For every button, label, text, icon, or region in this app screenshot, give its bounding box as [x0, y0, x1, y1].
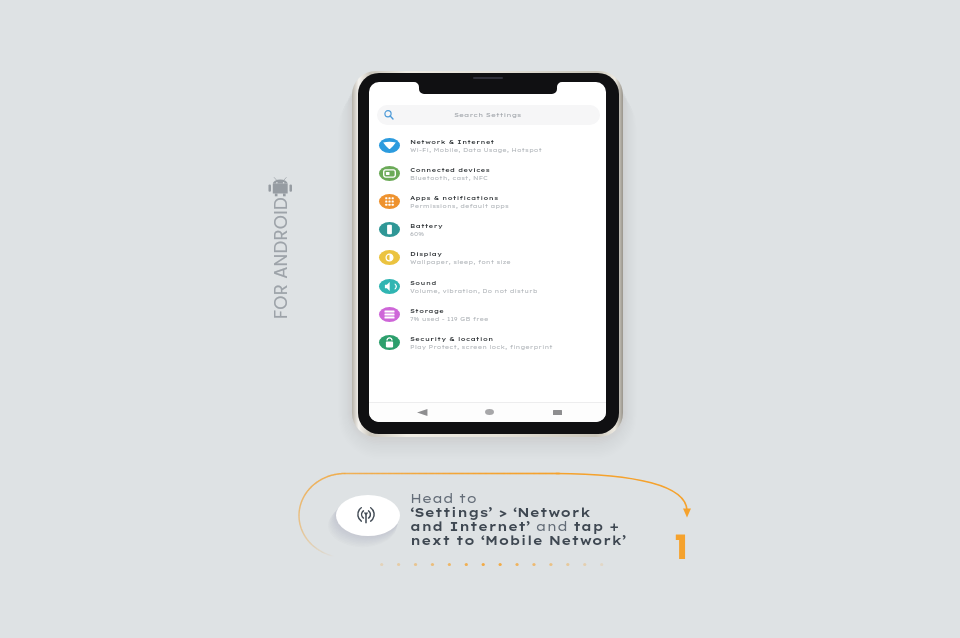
staticText: 60%: [410, 230, 424, 237]
staticText: Volume, vibration, Do not disturb: [410, 287, 538, 294]
staticText: 1: [675, 524, 688, 560]
button[interactable]: Mobile network: [336, 495, 400, 536]
staticText: ‘Settings’ > ‘Network: [410, 504, 591, 520]
button[interactable]: Back: [416, 404, 428, 420]
button[interactable]: Sound: [369, 272, 606, 300]
staticText: 7% used - 119 GB free: [410, 315, 489, 322]
staticText: Battery: [410, 222, 443, 230]
staticText: and Internet’ and tap +: [410, 518, 620, 534]
button[interactable]: Apps & notifications: [369, 187, 606, 215]
staticText: Bluetooth, cast, NFC: [410, 174, 488, 181]
button[interactable]: Home: [483, 404, 495, 420]
button[interactable]: Battery: [369, 215, 606, 243]
staticText: Network & Internet: [410, 138, 495, 146]
staticText: Display: [410, 250, 443, 258]
staticText: Head to: [410, 490, 478, 506]
staticText: Security & location: [410, 335, 494, 343]
button[interactable]: Recent apps: [551, 404, 563, 420]
staticText: Connected devices: [410, 166, 490, 174]
staticText: Storage: [410, 307, 445, 315]
staticText: Wi-Fi, Mobile, Data Usage, Hotspot: [410, 146, 542, 153]
staticText: Wallpaper, sleep, font size: [410, 258, 511, 265]
button[interactable]: Storage: [369, 300, 606, 328]
button[interactable]: Display: [369, 243, 606, 271]
staticText: Permissions, default apps: [410, 202, 509, 209]
staticText: FOR ANDROID: [268, 196, 293, 319]
staticText: Apps & notifications: [410, 194, 499, 202]
button[interactable]: Connected devices: [369, 159, 606, 187]
button[interactable]: Search Settings: [377, 105, 600, 125]
staticText: Search Settings: [454, 111, 522, 119]
staticText: Play Protect, screen lock, fingerprint: [410, 343, 553, 350]
staticText: next to ‘Mobile Network’: [410, 532, 627, 548]
staticText: Sound: [410, 279, 437, 287]
button[interactable]: Network & Internet: [369, 131, 606, 159]
button[interactable]: Security & location: [369, 328, 606, 356]
